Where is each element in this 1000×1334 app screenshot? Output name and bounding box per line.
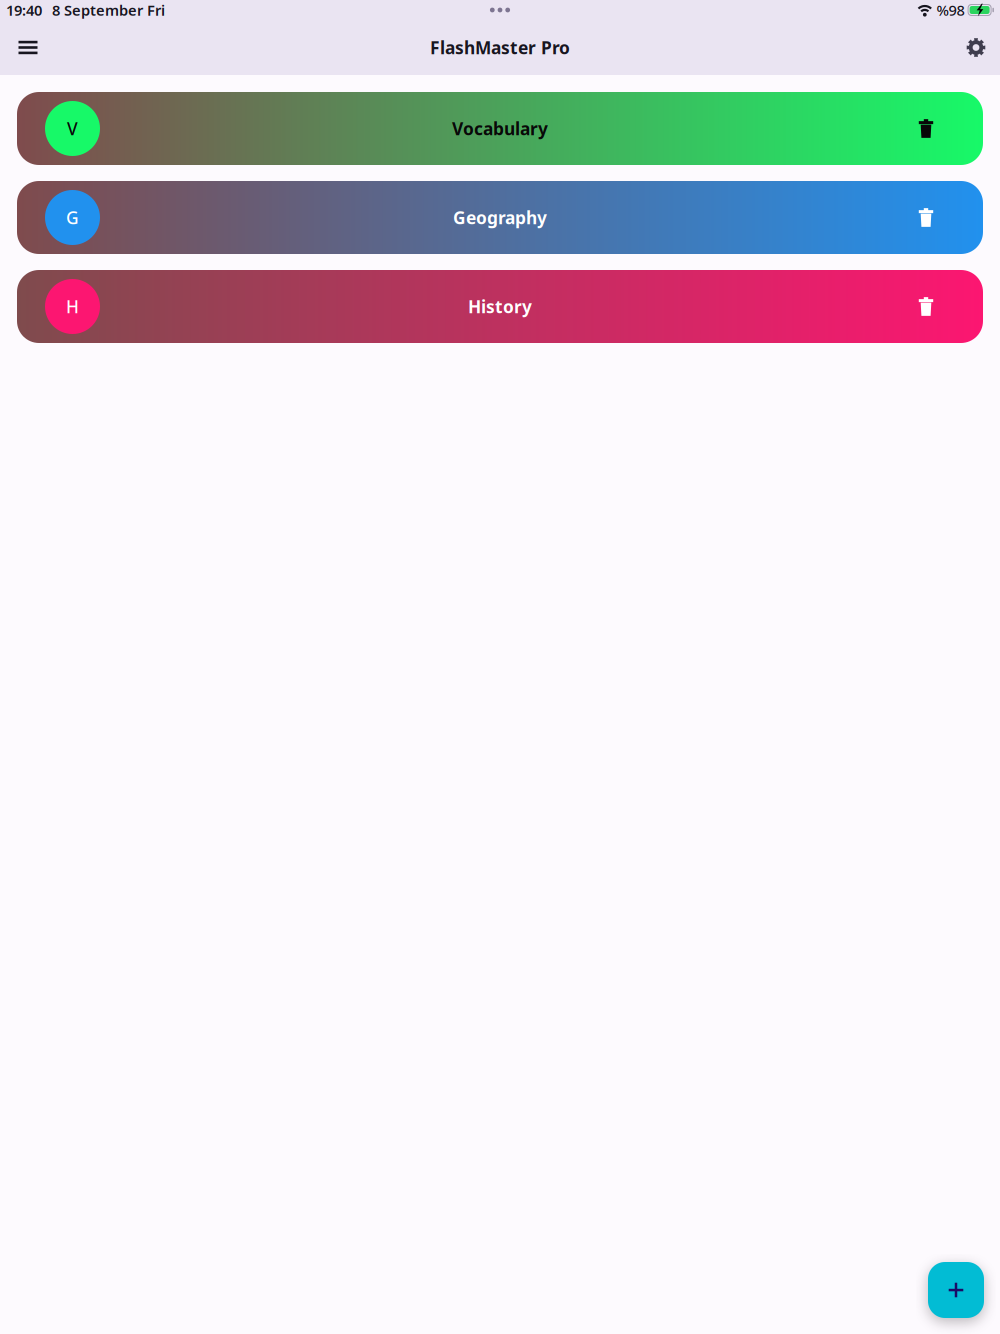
button[interactable]: Settings	[953, 24, 999, 70]
staticText: V	[67, 117, 78, 140]
button[interactable]: Add deck	[928, 1262, 984, 1318]
button[interactable]: Geography	[17, 181, 983, 254]
staticText: FlashMaster Pro	[430, 36, 570, 59]
button[interactable]: Vocabulary	[17, 92, 983, 165]
button[interactable]: Delete Geography	[913, 204, 939, 230]
staticText: G	[66, 206, 79, 229]
staticText: Vocabulary	[452, 117, 548, 140]
staticText: Geography	[453, 206, 547, 229]
staticText: 19:40	[6, 0, 42, 20]
staticText: %98	[937, 0, 965, 20]
staticText: H	[66, 295, 79, 318]
button[interactable]: History	[17, 270, 983, 343]
button[interactable]: Delete Vocabulary	[913, 115, 939, 141]
staticText: History	[468, 295, 532, 318]
button[interactable]: Menu	[5, 24, 51, 70]
button[interactable]: Delete History	[913, 293, 939, 319]
staticText: 8 September Fri	[52, 0, 165, 20]
